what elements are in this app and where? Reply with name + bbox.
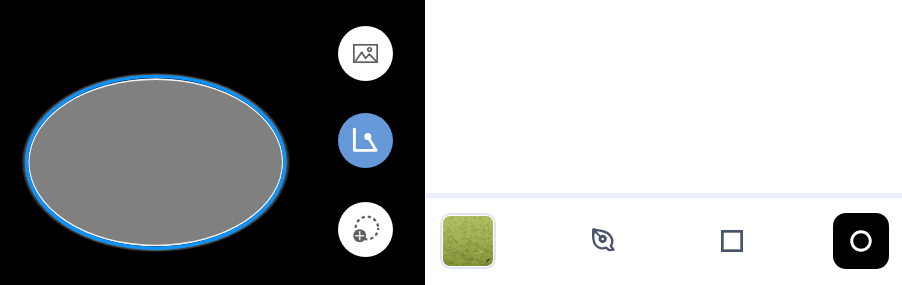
button[interactable]: Capture [833, 213, 889, 269]
button[interactable]: Photo thumbnail [443, 216, 493, 266]
button[interactable]: Home [707, 216, 757, 266]
button[interactable]: Gallery [338, 26, 393, 81]
button[interactable]: Back [580, 216, 626, 262]
button[interactable]: Add selection [338, 202, 393, 257]
button[interactable]: Shape tool [338, 113, 393, 168]
